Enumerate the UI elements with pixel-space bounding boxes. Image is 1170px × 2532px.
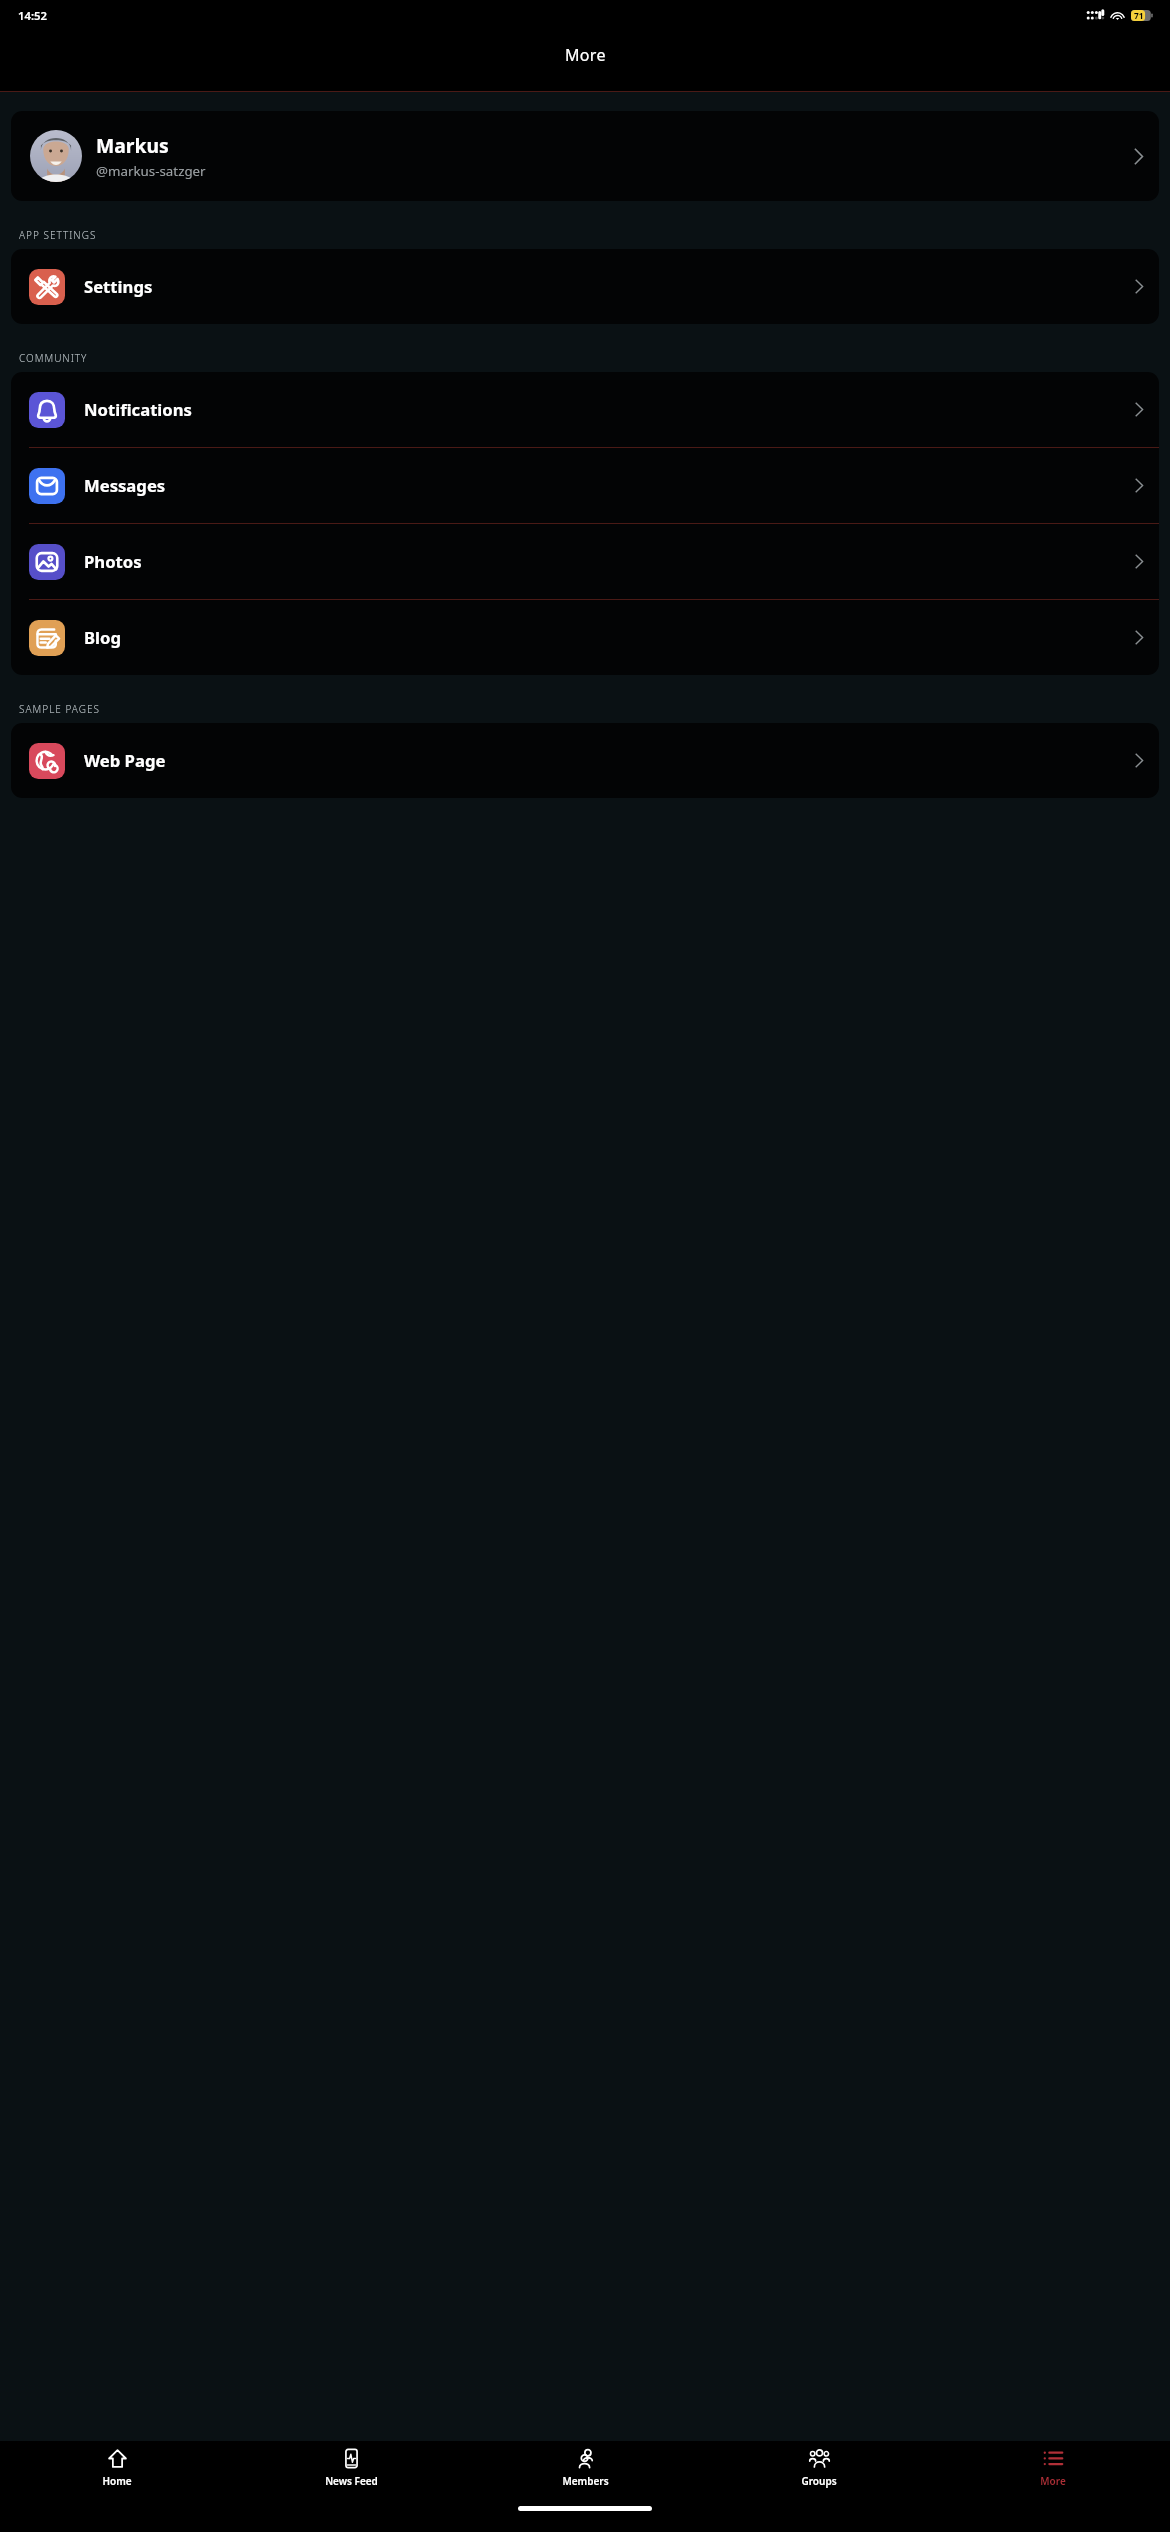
- button[interactable]: Groups: [702, 2441, 936, 2497]
- staticText: Messages: [84, 474, 166, 497]
- button[interactable]: Notifications: [11, 372, 1159, 447]
- button[interactable]: Messages: [11, 448, 1159, 523]
- button[interactable]: Home: [0, 2441, 234, 2497]
- staticText: APP SETTINGS: [19, 228, 97, 242]
- staticText: 71: [1134, 10, 1144, 21]
- staticText: News Feed: [325, 2474, 378, 2488]
- staticText: @markus-satzger: [96, 162, 206, 180]
- staticText: Groups: [801, 2474, 837, 2488]
- button[interactable]: Photos: [11, 524, 1159, 599]
- staticText: COMMUNITY: [19, 351, 88, 365]
- button[interactable]: Members: [468, 2441, 702, 2497]
- staticText: SAMPLE PAGES: [19, 702, 100, 716]
- button[interactable]: Markus: [11, 111, 1159, 201]
- staticText: Home: [102, 2474, 132, 2488]
- button[interactable]: Web Page: [11, 723, 1159, 798]
- button[interactable]: News Feed: [234, 2441, 468, 2497]
- staticText: Notifications: [84, 398, 192, 421]
- staticText: More: [1040, 2474, 1066, 2488]
- staticText: Photos: [84, 550, 142, 573]
- staticText: Web Page: [84, 749, 166, 772]
- button[interactable]: Settings: [11, 249, 1159, 324]
- button[interactable]: Blog: [11, 600, 1159, 675]
- staticText: Members: [562, 2474, 609, 2488]
- staticText: More: [565, 44, 606, 66]
- staticText: Markus: [96, 132, 169, 158]
- button[interactable]: More: [936, 2441, 1170, 2497]
- staticText: 14:52: [18, 8, 48, 23]
- staticText: Blog: [84, 626, 121, 649]
- staticText: Settings: [84, 275, 153, 298]
